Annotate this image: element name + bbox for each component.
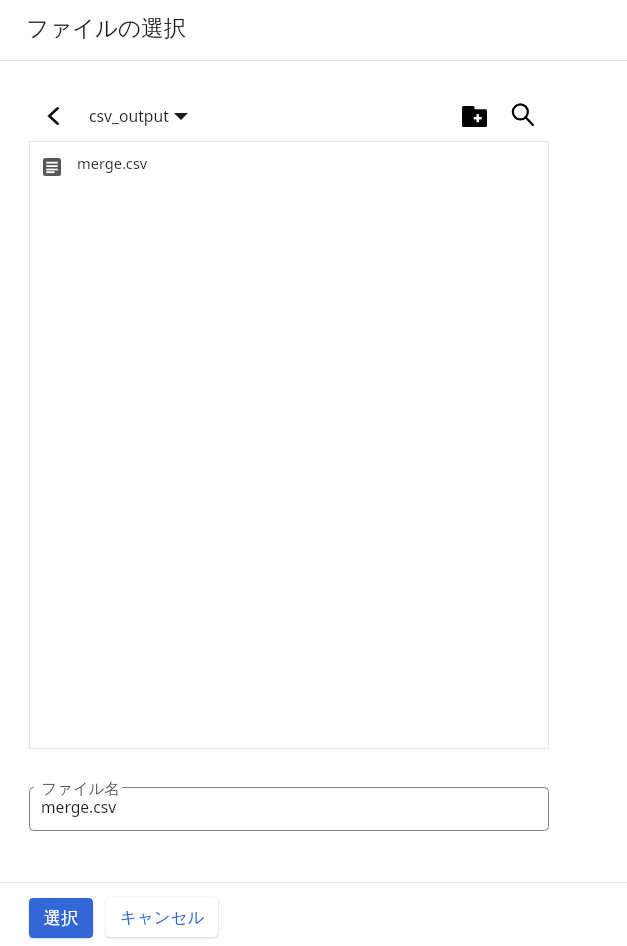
- staticText: csv_output: [89, 105, 169, 126]
- staticText: ファイルの選択: [26, 14, 187, 42]
- button[interactable]: Create new folder: [452, 94, 496, 138]
- button[interactable]: 選択: [29, 898, 93, 938]
- staticText: 選択: [44, 907, 79, 929]
- button[interactable]: キャンセル: [106, 897, 218, 937]
- button[interactable]: Back: [41, 103, 66, 128]
- staticText: merge.csv: [77, 153, 148, 173]
- button[interactable]: merge.csv: [29, 141, 549, 191]
- staticText: キャンセル: [120, 907, 205, 928]
- staticText: ファイル名: [41, 779, 120, 799]
- staticText: merge.csv: [41, 796, 117, 817]
- button[interactable]: Search: [501, 93, 545, 137]
- button[interactable]: csv_output: [84, 100, 197, 130]
